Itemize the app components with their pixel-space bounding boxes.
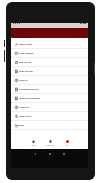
button[interactable]: Cancellation policies: [11, 85, 88, 94]
button[interactable]: Modify Tunes: [11, 40, 88, 49]
staticText: Contact us: [19, 106, 30, 109]
button[interactable]: Rate the app: [11, 58, 88, 67]
button[interactable]: Home: [31, 140, 36, 149]
staticText: Terms and conditions: [19, 97, 40, 100]
button[interactable]: More: [65, 140, 69, 149]
button[interactable]: Terms and conditions: [11, 94, 88, 103]
staticText: My Bookings: [45, 144, 55, 146]
staticText: Contact us: [19, 106, 30, 109]
button[interactable]: My Bookings: [45, 140, 55, 149]
staticText: Login: [19, 124, 25, 127]
staticText: Write feedback: [19, 52, 34, 55]
staticText: About us: [19, 79, 28, 82]
staticText: Share this app: [19, 70, 33, 73]
staticText: Modify Tunes: [19, 43, 32, 46]
staticText: Rate the app: [19, 61, 32, 64]
button[interactable]: Login: [11, 121, 88, 130]
staticText: Track my bus: [19, 115, 32, 118]
button[interactable]: About us: [11, 76, 88, 85]
button[interactable]: Track my bus: [11, 112, 88, 121]
staticText: Share this app: [19, 70, 33, 73]
staticText: Track my bus: [19, 115, 32, 118]
button[interactable]: Write feedback: [11, 49, 88, 58]
button[interactable]: Contact us: [11, 103, 88, 112]
staticText: More Options: [16, 32, 30, 35]
staticText: Cancellation policies: [19, 88, 39, 91]
other: Back: [34, 153, 36, 155]
staticText: Cancellation policies: [19, 88, 39, 91]
staticText: Home: [31, 144, 36, 146]
button[interactable]: Share this app: [11, 67, 88, 76]
staticText: More: [65, 144, 69, 146]
staticText: Rate the app: [19, 61, 32, 64]
staticText: Login: [19, 124, 25, 127]
staticText: Write feedback: [19, 52, 34, 55]
staticText: Modify Tunes: [19, 43, 32, 46]
staticText: About us: [19, 79, 28, 82]
staticText: Terms and conditions: [19, 97, 40, 100]
